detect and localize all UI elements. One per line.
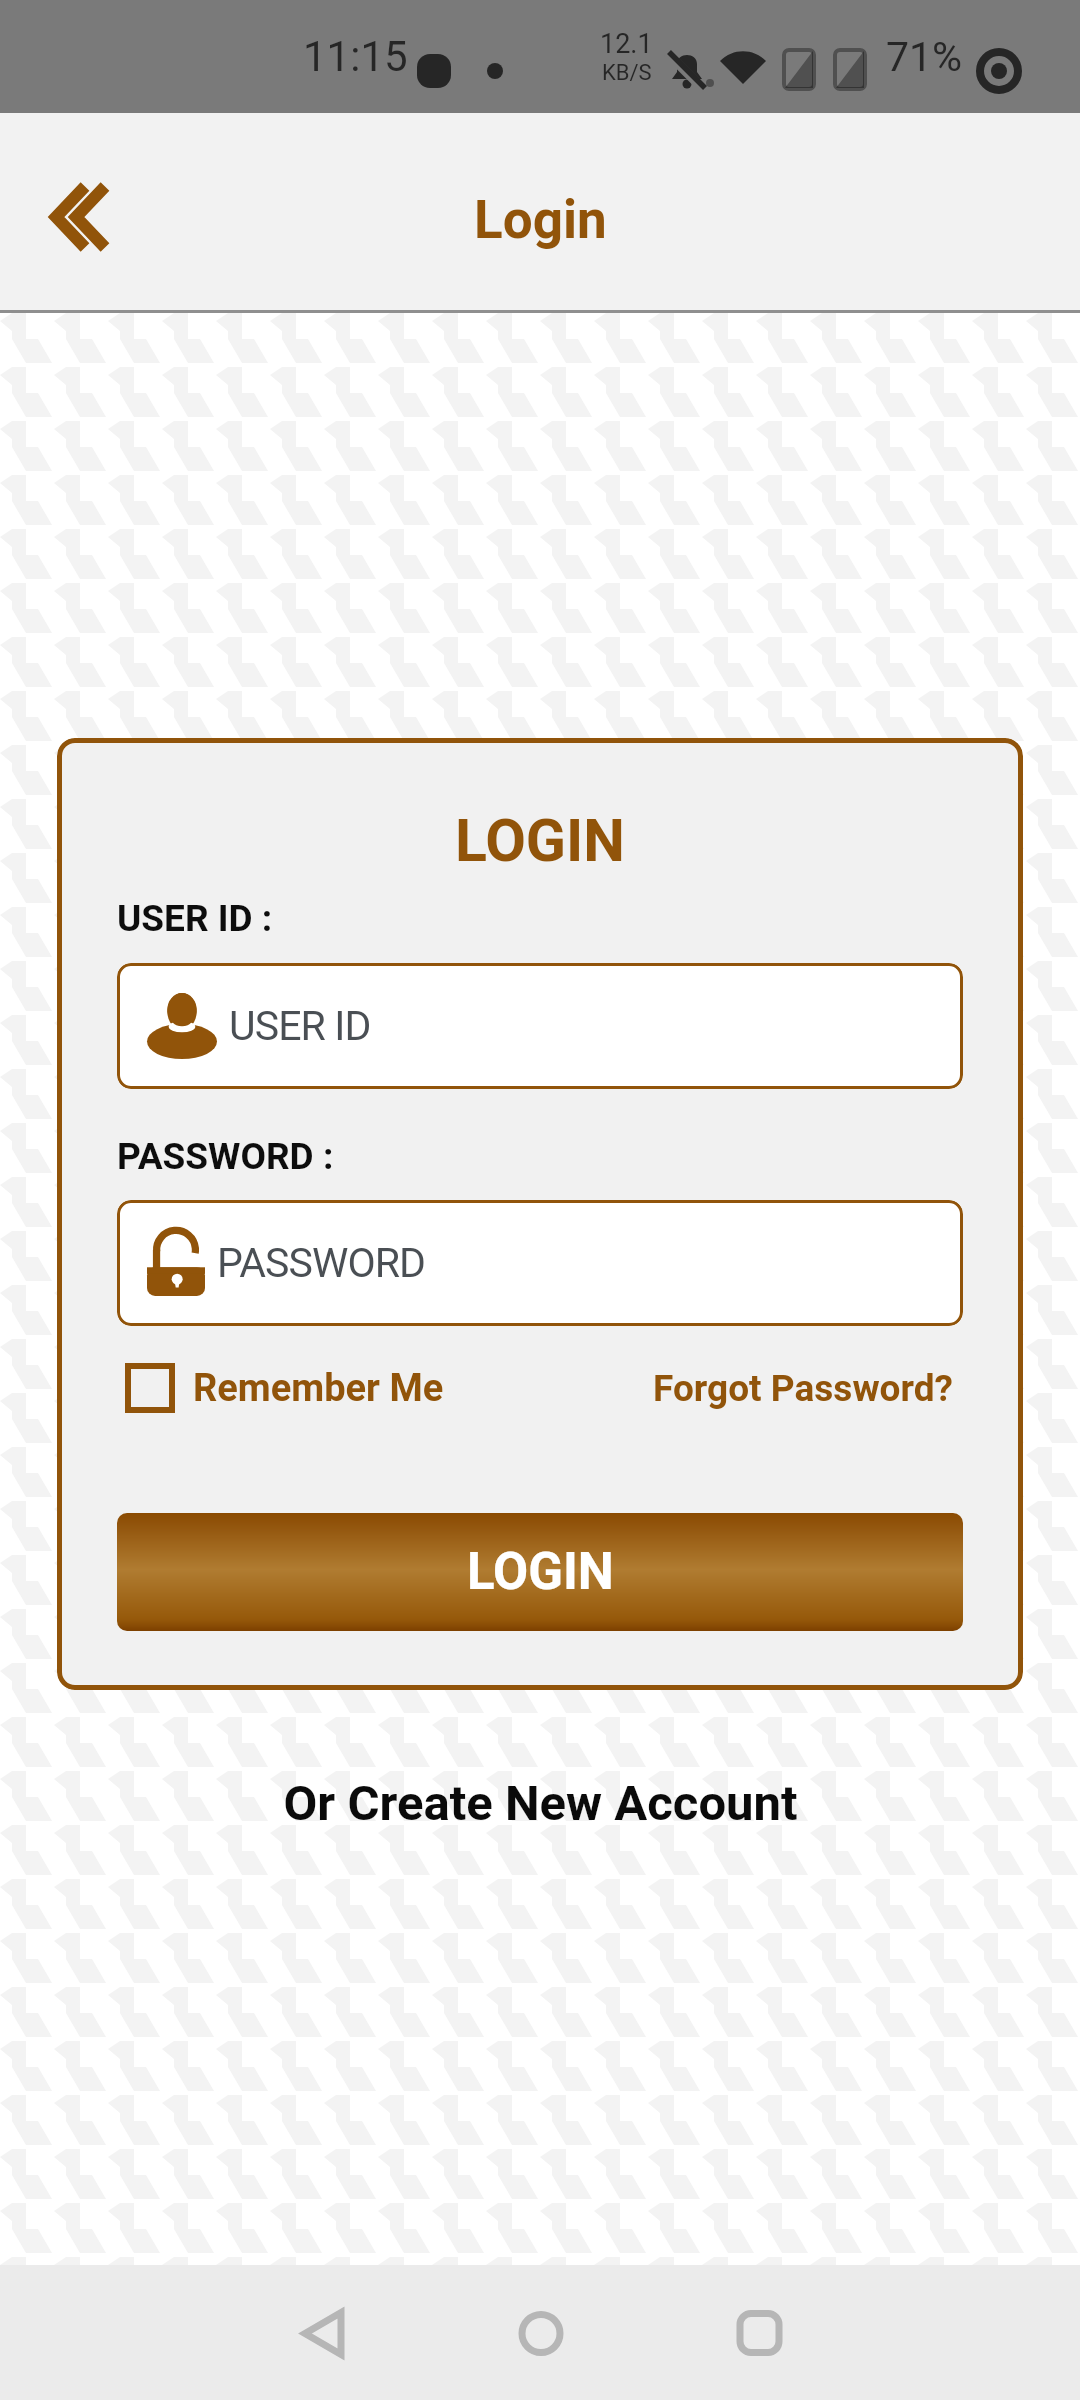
- staticText: 71%: [886, 33, 963, 81]
- staticText: PASSWORD :: [117, 1135, 334, 1178]
- button[interactable]: Or Create New Account: [263, 1765, 818, 1842]
- button[interactable]: Home: [486, 2278, 596, 2388]
- staticText: 11:15: [303, 32, 408, 81]
- button[interactable]: LOGIN: [117, 1513, 963, 1631]
- button[interactable]: Recents: [704, 2278, 814, 2388]
- staticText: KB/S: [602, 60, 652, 86]
- button[interactable]: USER ID: [117, 963, 963, 1089]
- button[interactable]: Forgot Password?: [653, 1367, 963, 1410]
- staticText: LOGIN: [467, 1542, 614, 1602]
- staticText: USER ID :: [117, 897, 273, 940]
- staticText: 12.1: [600, 28, 653, 60]
- button[interactable]: Back: [270, 2278, 380, 2388]
- staticText: Login: [474, 189, 607, 251]
- staticText: Remember Me: [193, 1366, 444, 1411]
- button[interactable]: Remember Me: [117, 1363, 444, 1413]
- staticText: PASSWORD: [217, 1239, 426, 1287]
- staticText: USER ID: [229, 1002, 371, 1050]
- staticText: LOGIN: [117, 806, 963, 875]
- button[interactable]: PASSWORD: [117, 1200, 963, 1326]
- button[interactable]: Back: [23, 155, 147, 279]
